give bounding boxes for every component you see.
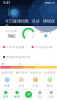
button[interactable]: 健康: [11, 89, 23, 100]
button[interactable]: 今日运动目标: [28, 42, 57, 52]
staticText: 9:41: [3, 0, 10, 5]
button[interactable]: 在线问诊: [28, 77, 43, 82]
staticText: +: [27, 91, 30, 98]
button[interactable]: 药品配送: [43, 77, 57, 82]
staticText: 药品配送: [44, 71, 56, 74]
staticText: 7842: [7, 33, 15, 38]
button[interactable]: 健康档案: [0, 77, 14, 82]
staticText: 配送: [47, 84, 53, 88]
button[interactable]: 新增: [23, 89, 34, 100]
staticText: 消息: [37, 95, 43, 98]
staticText: ▪▪▪ ▰: [45, 1, 54, 4]
staticText: 在线问诊: [30, 71, 42, 74]
button[interactable]: 我的: [46, 89, 57, 100]
button[interactable]: 预约挂号: [14, 77, 28, 82]
staticText: 睡眠质量: [40, 30, 52, 34]
button[interactable]: 首页: [0, 89, 11, 100]
staticText: 档案: [4, 84, 10, 88]
staticText: 首页: [3, 95, 9, 98]
staticText: 问诊: [33, 84, 39, 88]
staticText: 健康档案: [1, 71, 13, 74]
button[interactable]: 心率异常提醒: [0, 42, 28, 52]
staticText: 心率异常提醒: [6, 45, 24, 49]
staticText: 预约挂号: [15, 71, 27, 74]
staticText: 今日步数: [5, 29, 17, 33]
staticText: 健康: [14, 95, 20, 98]
staticText: 挂号: [18, 84, 24, 88]
button[interactable]: 消息: [34, 89, 46, 100]
staticText: 我的: [48, 95, 54, 98]
button[interactable]: 健康服务推荐列表: [0, 52, 57, 62]
staticText: 健康服务推荐列表: [6, 55, 30, 59]
staticText: 今日运动目标: [35, 45, 53, 49]
staticText: 今日健康指数 · 良好 · 继续保持: [5, 18, 55, 29]
